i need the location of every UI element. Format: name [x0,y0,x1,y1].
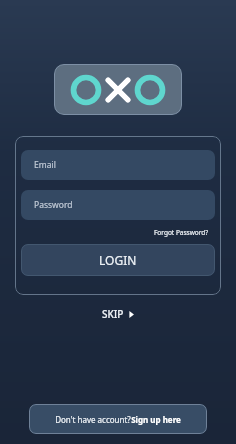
button[interactable]: LOGIN [21,244,215,276]
staticText: SKIP [102,307,124,321]
button[interactable]: SKIP [92,303,145,325]
staticText: Don't have account? [55,414,131,425]
staticText: Forgot Password? [154,228,209,237]
button[interactable]: OXO logo [54,64,182,115]
button[interactable]: Don't have account? [29,404,207,434]
staticText: LOGIN [99,252,137,268]
button[interactable]: Email [21,150,215,180]
button[interactable]: Forgot Password? [148,226,215,239]
staticText: Password [34,199,73,211]
button[interactable]: Password [21,190,215,220]
staticText: Email [34,159,56,171]
staticText: Sign up here [131,414,181,425]
